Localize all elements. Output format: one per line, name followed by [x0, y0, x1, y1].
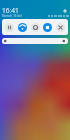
staticText: 16:41 [2, 6, 19, 15]
button[interactable]: Quick setting 3 [43, 23, 52, 32]
button[interactable]: Quick setting 0 [5, 23, 14, 32]
button[interactable]: Settings [63, 9, 67, 13]
button[interactable]: Quick setting 2 [31, 23, 40, 32]
staticText: Martedì, 18 Sett [2, 14, 23, 18]
button[interactable]: Quick setting 1 [18, 23, 27, 32]
button[interactable]: Brightness [2, 38, 68, 44]
button[interactable]: Quick setting 4 [56, 23, 65, 32]
